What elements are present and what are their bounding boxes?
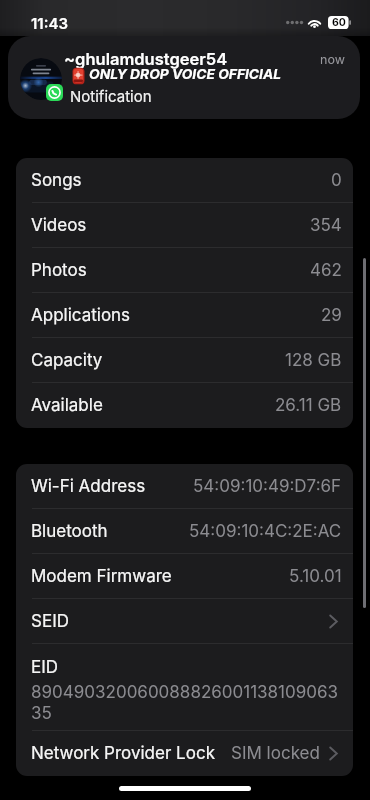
staticText: Wi-Fi Address	[31, 476, 146, 497]
staticText: EID	[31, 657, 59, 678]
button[interactable]: Bluetooth	[16, 509, 353, 554]
button[interactable]: Applications	[16, 293, 353, 338]
staticText: 11:43	[31, 14, 69, 32]
staticText: Notification	[70, 87, 152, 105]
staticText: 60	[332, 16, 346, 29]
staticText: 54:09:10:49:D7:6F	[193, 476, 342, 497]
staticText: ONLY DROP VOICE OFFICIAL	[89, 66, 282, 83]
button[interactable]: Available	[16, 383, 353, 428]
staticText: ~ghulamdustgeer54	[64, 49, 228, 69]
button[interactable]: EID	[16, 644, 353, 731]
button[interactable]: Wi-Fi Address	[16, 464, 353, 509]
staticText: 128 GB	[285, 350, 342, 371]
button[interactable]: Modem Firmware	[16, 554, 353, 599]
button[interactable]: SEID	[16, 599, 353, 644]
staticText: 354	[310, 215, 342, 236]
staticText: SEID	[31, 611, 69, 632]
staticText: Bluetooth	[31, 521, 108, 542]
button[interactable]: Capacity	[16, 338, 353, 383]
staticText: Capacity	[31, 350, 103, 371]
staticText: now	[320, 52, 345, 67]
staticText: 35	[31, 703, 52, 724]
staticText: 26.11 GB	[275, 395, 342, 416]
button[interactable]: Network Provider Lock	[16, 731, 353, 776]
staticText: 890490320060088826001138109063	[31, 682, 339, 703]
staticText: Available	[31, 395, 103, 416]
staticText: 29	[321, 305, 342, 326]
button[interactable]: Photos	[16, 248, 353, 293]
staticText: Photos	[31, 260, 87, 281]
button[interactable]: Songs	[16, 158, 353, 203]
staticText: 0	[331, 170, 342, 191]
staticText: Applications	[31, 305, 131, 326]
button[interactable]: Videos	[16, 203, 353, 248]
staticText: Videos	[31, 215, 87, 236]
staticText: Modem Firmware	[31, 566, 172, 587]
staticText: 54:09:10:4C:2E:AC	[189, 521, 342, 542]
staticText: 5.10.01	[289, 566, 342, 587]
staticText: SIM locked	[231, 743, 320, 764]
staticText: Songs	[31, 170, 82, 191]
staticText: Network Provider Lock	[31, 743, 215, 764]
button[interactable]: ~ghulamdustgeer54	[8, 36, 360, 119]
staticText: 462	[310, 260, 342, 281]
